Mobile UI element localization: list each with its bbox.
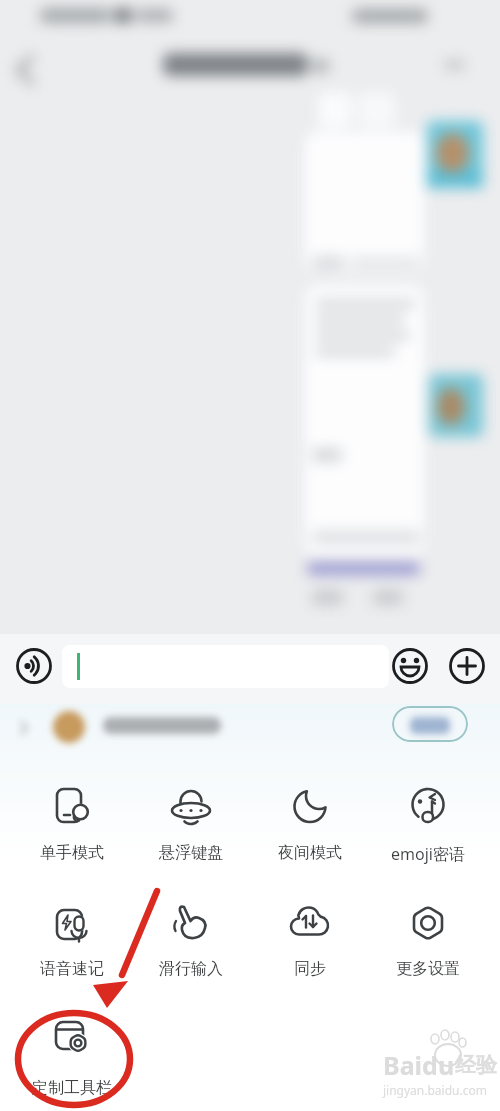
button[interactable] bbox=[15, 647, 53, 685]
staticText: 语音速记 bbox=[40, 959, 104, 979]
button[interactable] bbox=[368, 778, 488, 858]
button[interactable] bbox=[368, 895, 488, 975]
staticText: 同步 bbox=[294, 959, 326, 979]
button[interactable] bbox=[131, 778, 251, 858]
button[interactable] bbox=[12, 1013, 132, 1093]
button[interactable] bbox=[12, 895, 132, 975]
staticText: 更多设置 bbox=[396, 959, 460, 979]
staticText: 夜间模式 bbox=[278, 843, 342, 863]
button[interactable] bbox=[448, 647, 486, 685]
staticText: 单手模式 bbox=[40, 843, 104, 863]
staticText: emoji密语 bbox=[391, 843, 465, 865]
staticText: 滑行输入 bbox=[159, 959, 223, 979]
staticText: jingyan.baidu.com bbox=[383, 1082, 487, 1098]
button[interactable] bbox=[62, 645, 389, 688]
staticText: 定制工具栏 bbox=[32, 1078, 112, 1098]
button[interactable] bbox=[391, 647, 429, 685]
button[interactable] bbox=[250, 778, 370, 858]
button[interactable] bbox=[12, 778, 132, 858]
button[interactable] bbox=[250, 895, 370, 975]
staticText: Baidu bbox=[383, 1048, 455, 1082]
staticText: 经验 bbox=[455, 1052, 497, 1078]
staticText: 悬浮键盘 bbox=[159, 843, 223, 863]
button[interactable] bbox=[392, 706, 468, 742]
button[interactable] bbox=[131, 895, 251, 975]
